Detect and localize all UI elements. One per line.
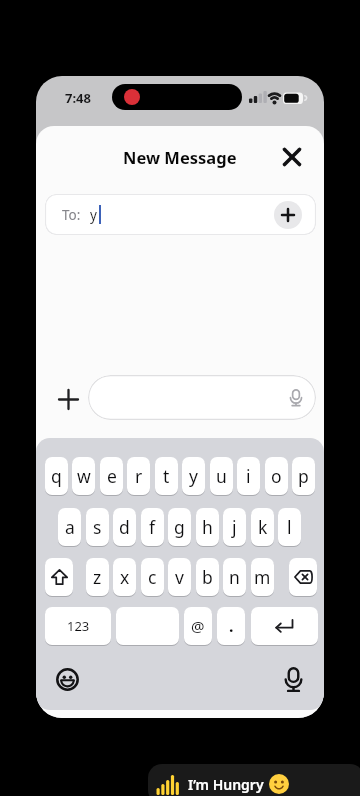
button[interactable]: x: [113, 558, 136, 596]
button[interactable]: [116, 607, 179, 645]
staticText: c: [148, 565, 157, 589]
staticText: 7:48: [65, 89, 91, 107]
staticText: n: [229, 565, 240, 589]
button[interactable]: I’m Hungry: [148, 764, 360, 796]
staticText: m: [254, 565, 271, 589]
button[interactable]: o: [265, 457, 288, 495]
button[interactable]: d: [113, 508, 136, 546]
button[interactable]: [278, 665, 308, 695]
button[interactable]: l: [278, 508, 301, 546]
staticText: d: [119, 515, 130, 539]
staticText: t: [163, 464, 170, 488]
staticText: @: [191, 616, 205, 636]
button[interactable]: b: [196, 558, 219, 596]
staticText: b: [202, 565, 213, 589]
button[interactable]: [54, 385, 82, 413]
button[interactable]: [88, 375, 316, 420]
button[interactable]: [52, 664, 82, 694]
button[interactable]: z: [86, 558, 109, 596]
button[interactable]: 123: [45, 607, 111, 645]
button[interactable]: u: [210, 457, 233, 495]
staticText: y: [189, 464, 198, 488]
button[interactable]: h: [196, 508, 219, 546]
button[interactable]: .: [217, 607, 245, 645]
button[interactable]: [45, 558, 73, 596]
staticText: p: [298, 464, 309, 488]
staticText: 123: [67, 617, 90, 635]
button[interactable]: c: [141, 558, 164, 596]
staticText: l: [287, 515, 292, 539]
staticText: f: [149, 515, 156, 539]
staticText: x: [120, 565, 130, 589]
button[interactable]: y: [182, 457, 205, 495]
staticText: z: [93, 565, 102, 589]
button[interactable]: To:: [45, 194, 316, 235]
button[interactable]: a: [58, 508, 81, 546]
staticText: e: [107, 464, 117, 488]
button[interactable]: w: [72, 457, 95, 495]
button[interactable]: [274, 201, 302, 229]
button[interactable]: t: [155, 457, 178, 495]
staticText: q: [51, 464, 62, 488]
button[interactable]: q: [45, 457, 68, 495]
button[interactable]: v: [168, 558, 191, 596]
button[interactable]: s: [86, 508, 109, 546]
staticText: r: [135, 464, 143, 488]
staticText: h: [202, 515, 213, 539]
button[interactable]: [251, 607, 318, 645]
button[interactable]: f: [141, 508, 164, 546]
staticText: a: [65, 515, 75, 539]
staticText: v: [175, 565, 184, 589]
staticText: j: [232, 515, 237, 539]
staticText: i: [246, 464, 251, 488]
staticText: New Message: [123, 146, 237, 168]
staticText: .: [229, 615, 234, 637]
staticText: To:: [62, 206, 81, 224]
button[interactable]: m: [251, 558, 274, 596]
staticText: k: [258, 515, 268, 539]
button[interactable]: j: [223, 508, 246, 546]
button[interactable]: k: [251, 508, 274, 546]
button[interactable]: g: [168, 508, 191, 546]
button[interactable]: n: [223, 558, 246, 596]
staticText: u: [216, 464, 227, 488]
button[interactable]: [276, 141, 308, 173]
button[interactable]: e: [100, 457, 123, 495]
button[interactable]: i: [237, 457, 260, 495]
staticText: y: [90, 206, 97, 224]
button[interactable]: @: [184, 607, 212, 645]
button[interactable]: p: [292, 457, 315, 495]
button[interactable]: [289, 558, 317, 596]
staticText: o: [271, 464, 282, 488]
staticText: s: [93, 515, 102, 539]
staticText: g: [174, 515, 185, 539]
staticText: I’m Hungry: [188, 775, 264, 794]
staticText: w: [77, 464, 91, 488]
button[interactable]: r: [127, 457, 150, 495]
